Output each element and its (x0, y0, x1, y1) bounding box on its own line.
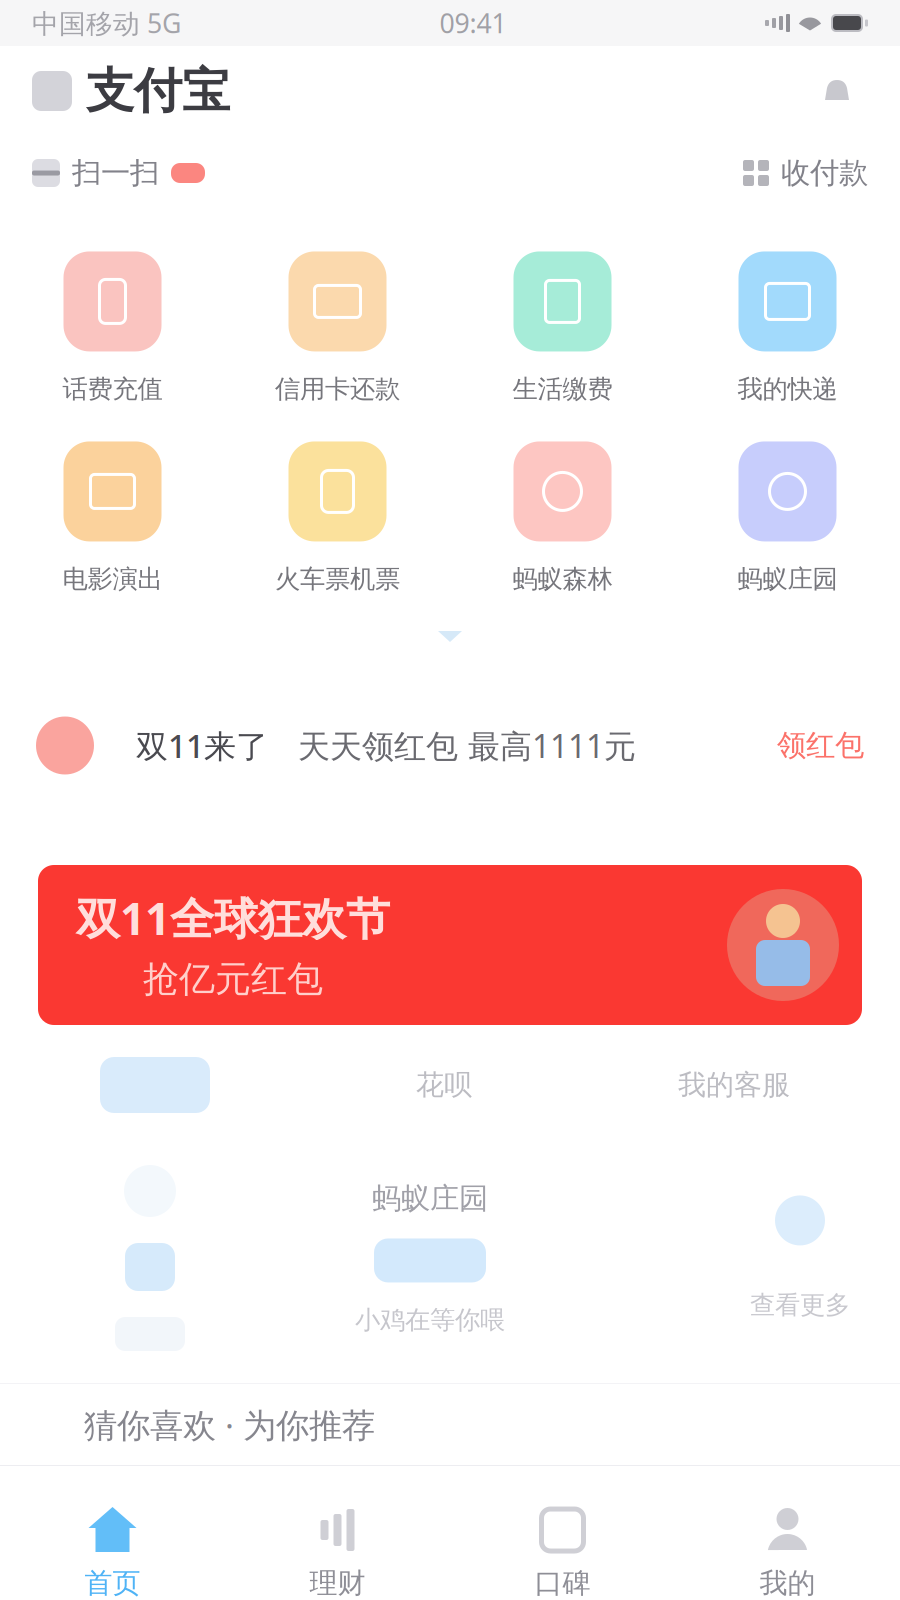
staticText: 收付款 (781, 155, 868, 191)
staticText: 天天领红包 最高1111元 (298, 724, 636, 767)
staticText: 猜你喜欢 · 为你推荐 (84, 1402, 375, 1447)
button[interactable]: Ant Forest (0, 1133, 300, 1383)
button[interactable]: 扫一扫 (32, 155, 205, 191)
button[interactable]: More services (775, 1195, 825, 1245)
staticText: 中国移动 5G (32, 5, 181, 41)
staticText: 信用卡还款 (275, 373, 400, 404)
button[interactable]: 我的客服 (678, 1068, 900, 1102)
button[interactable]: 火车票机票 (225, 444, 450, 592)
staticText: 双11来了 (136, 724, 268, 767)
button[interactable]: Notifications (806, 60, 868, 122)
staticText: 我的快递 (737, 373, 837, 404)
staticText: 蚂蚁庄园 (737, 563, 837, 594)
button[interactable]: 电影演出 (0, 444, 225, 592)
staticText: 花呗 (416, 1068, 472, 1102)
button[interactable]: 双11来了 (0, 668, 900, 823)
button[interactable]: 蚂蚁森林 (450, 444, 675, 592)
button[interactable]: 花呗 (416, 1068, 472, 1102)
staticText: 双11全球狂欢节 (76, 889, 390, 947)
staticText: 09:41 (439, 5, 506, 41)
staticText: 理财 (309, 1566, 365, 1600)
button[interactable]: 话费充值 (0, 254, 225, 402)
button[interactable]: 信用卡还款 (225, 254, 450, 402)
staticText: 话费充值 (62, 373, 162, 404)
staticText: 蚂蚁森林 (512, 563, 612, 594)
staticText: 小鸡在等你喂 (355, 1304, 505, 1336)
staticText: 我的客服 (678, 1068, 790, 1102)
staticText: 生活缴费 (512, 373, 612, 404)
staticText: 火车票机票 (275, 563, 400, 594)
staticText: 抢亿元红包 (143, 957, 323, 1001)
button[interactable]: 口碑 (450, 1466, 675, 1600)
button[interactable]: 支付宝 (32, 61, 230, 120)
button[interactable]: Membership (0, 1057, 210, 1113)
staticText: 我的 (759, 1566, 815, 1600)
staticText: 电影演出 (62, 563, 162, 594)
button[interactable]: 首页 (0, 1466, 225, 1600)
button[interactable]: 双11全球狂欢节 (0, 823, 900, 1037)
staticText: 口碑 (534, 1566, 590, 1600)
staticText: 首页 (84, 1566, 140, 1600)
staticText: 领红包 (777, 727, 864, 763)
button[interactable]: 我的快递 (675, 254, 900, 402)
button[interactable]: 我的 (675, 1466, 900, 1600)
button[interactable]: 蚂蚁庄园 (300, 1133, 560, 1383)
button[interactable]: 理财 (225, 1466, 450, 1600)
staticText: 支付宝 (86, 61, 230, 120)
button[interactable]: 收付款 (743, 155, 868, 191)
button[interactable]: 蚂蚁庄园 (675, 444, 900, 592)
staticText: 查看更多 (750, 1289, 850, 1320)
button[interactable]: 生活缴费 (450, 254, 675, 402)
staticText: 蚂蚁庄园 (372, 1180, 488, 1216)
staticText: 扫一扫 (72, 155, 159, 191)
